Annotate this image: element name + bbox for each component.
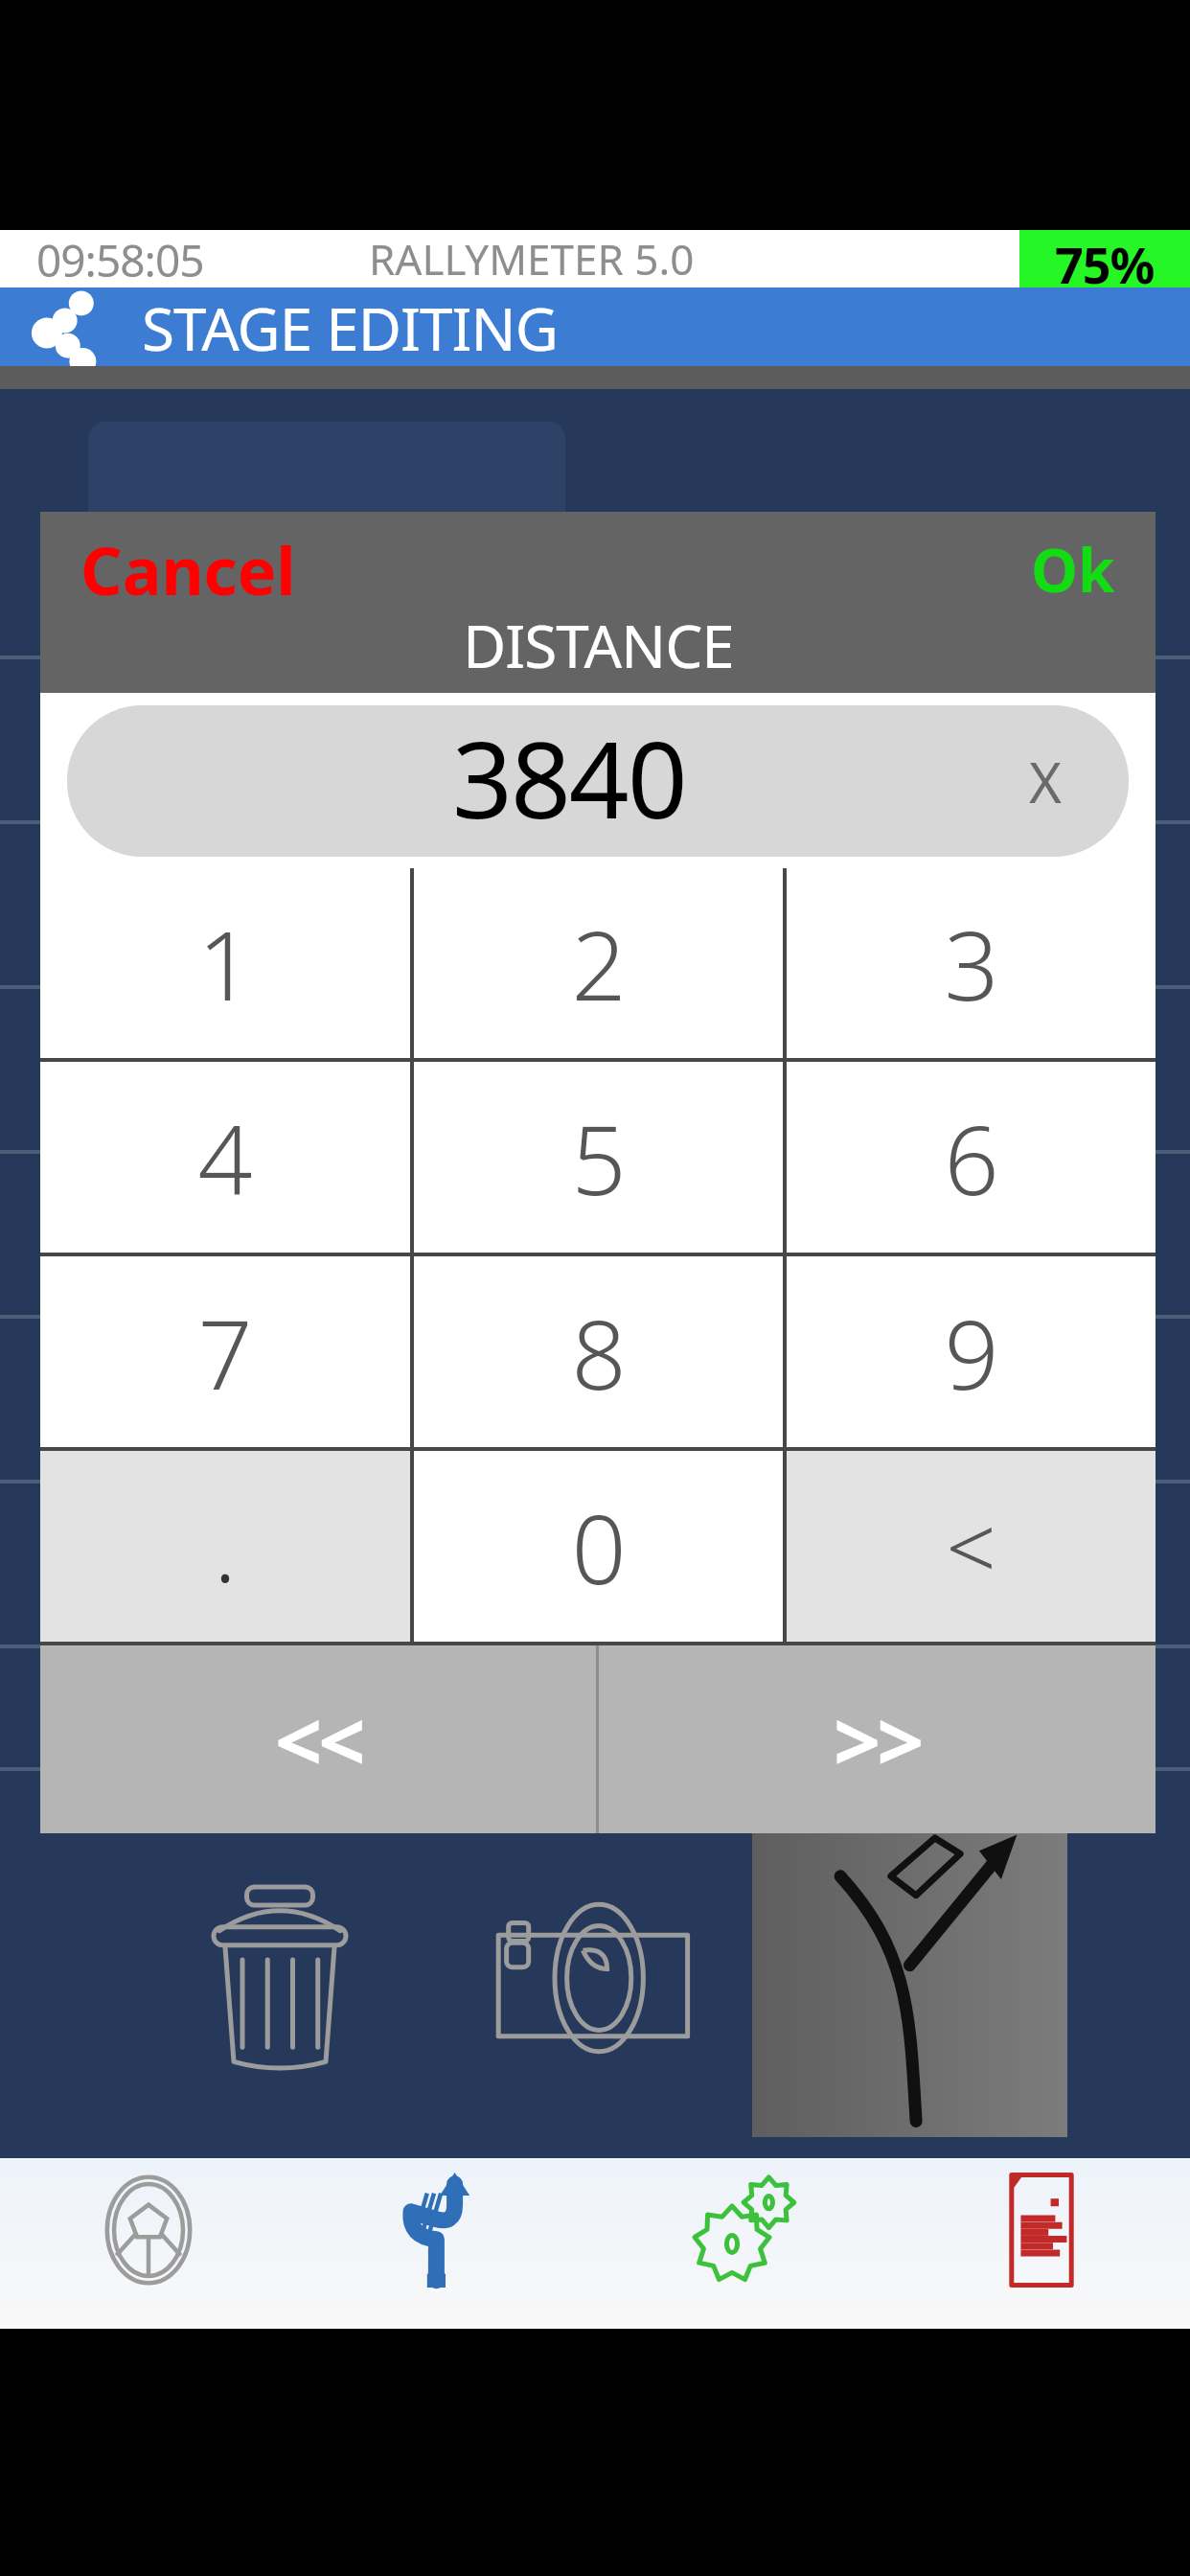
staticText: 9 (944, 1287, 999, 1417)
button[interactable]: STAGE EDITING (0, 287, 1190, 366)
button[interactable]: Photo (437, 1819, 752, 2137)
staticText: 2 (571, 898, 627, 1028)
button[interactable]: 8 (414, 1256, 783, 1447)
staticText: RALLYMETER 5.0 (369, 230, 695, 287)
button[interactable]: 3840 (67, 705, 1129, 857)
button[interactable]: 7 (40, 1256, 410, 1447)
button[interactable]: < (787, 1451, 1156, 1642)
button[interactable]: Next (599, 1645, 1156, 1833)
staticText: 5 (571, 1092, 627, 1223)
staticText: 4 (197, 1092, 253, 1223)
staticText: DISTANCE (463, 605, 734, 685)
button[interactable]: 5 (414, 1062, 783, 1253)
button[interactable]: Cancel (40, 512, 319, 628)
staticText: 75% (1055, 230, 1155, 287)
button[interactable]: Ok (1008, 512, 1156, 623)
staticText: 8 (571, 1287, 627, 1417)
button[interactable]: Settings (594, 2158, 892, 2329)
staticText: 6 (944, 1092, 999, 1223)
staticText: << (275, 1684, 362, 1796)
staticText: 3840 (452, 705, 686, 849)
button[interactable]: 9 (787, 1256, 1156, 1447)
button[interactable]: Junction sketch (752, 1819, 1067, 2137)
staticText: Cancel (80, 525, 296, 614)
staticText: 1 (197, 898, 253, 1028)
button[interactable]: 0 (414, 1451, 783, 1642)
button[interactable]: . (40, 1451, 410, 1642)
staticText: < (946, 1486, 996, 1606)
staticText: Ok (1031, 529, 1115, 609)
staticText: 09:58:05 (36, 230, 204, 287)
staticText: . (214, 1483, 237, 1609)
button[interactable]: 4 (40, 1062, 410, 1253)
staticText: X (1029, 744, 1062, 819)
button[interactable]: 3 (787, 868, 1156, 1058)
button[interactable]: 6 (787, 1062, 1156, 1253)
button[interactable]: Clear (1029, 744, 1129, 819)
button[interactable]: 1 (40, 868, 410, 1058)
staticText: STAGE EDITING (142, 287, 558, 362)
button[interactable]: Steering (0, 2158, 297, 2329)
staticText: 7 (197, 1287, 253, 1417)
button[interactable]: Route (297, 2158, 594, 2329)
button[interactable]: Delete (123, 1819, 437, 2137)
button[interactable]: Previous (40, 1645, 596, 1833)
staticText: >> (834, 1684, 921, 1796)
staticText: 0 (571, 1482, 627, 1612)
staticText: 3 (944, 898, 999, 1028)
button[interactable]: Report (892, 2158, 1190, 2329)
button[interactable]: 2 (414, 868, 783, 1058)
